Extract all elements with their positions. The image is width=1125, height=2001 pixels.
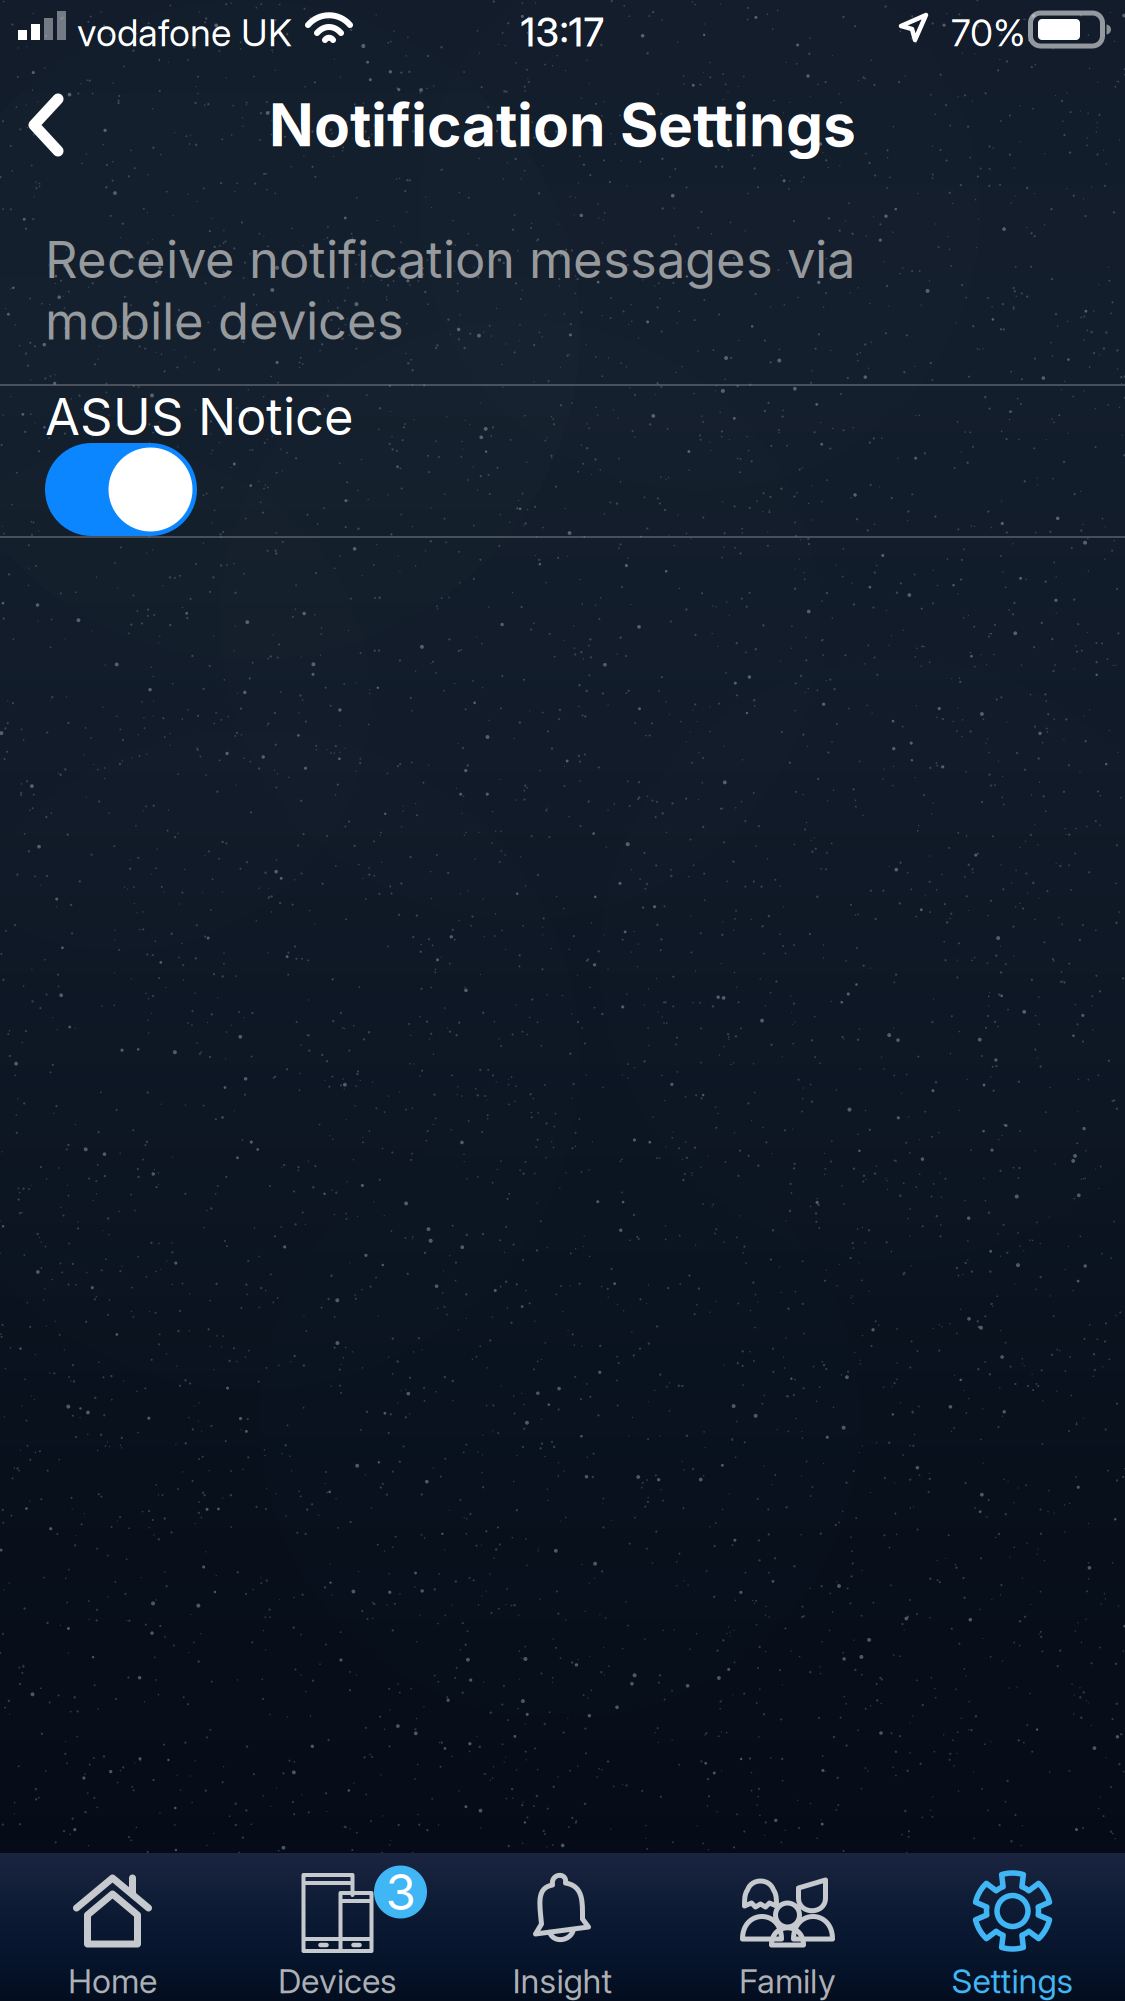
button[interactable]: Family (675, 1853, 900, 2001)
staticText: Family (739, 1961, 836, 2001)
staticText: mobile devices (45, 290, 404, 352)
staticText: Notification Settings (269, 89, 856, 160)
button[interactable]: Back (0, 78, 92, 172)
button[interactable]: Settings (900, 1853, 1125, 2001)
button[interactable]: Insight (450, 1853, 675, 2001)
staticText: Settings (951, 1961, 1073, 2001)
staticText: Devices (278, 1961, 397, 2001)
staticText: 3 (385, 1862, 415, 1922)
staticText: Insight (512, 1961, 612, 2001)
staticText: ASUS Notice (45, 386, 354, 447)
button[interactable]: ASUS Notice (0, 386, 1125, 536)
staticText: 70% (951, 10, 1026, 55)
button[interactable]: 3 (225, 1853, 450, 2001)
staticText: vodafone UK (77, 10, 292, 55)
staticText: 13:17 (520, 9, 604, 56)
button[interactable]: Home (0, 1853, 225, 2001)
staticText: Receive notification messages via (45, 229, 855, 290)
staticText: Home (68, 1961, 157, 2001)
